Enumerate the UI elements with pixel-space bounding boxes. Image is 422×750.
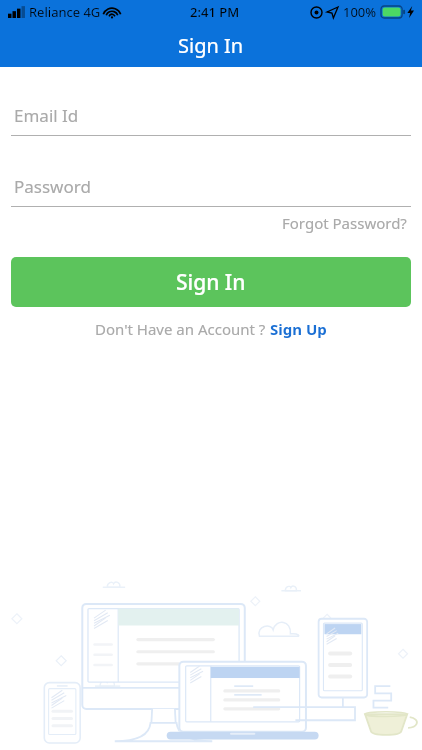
staticText: 100% — [343, 3, 377, 21]
staticText: Sign In — [176, 268, 246, 297]
staticText: Reliance 4G — [29, 3, 101, 21]
other: Location — [327, 7, 338, 18]
button[interactable]: Email Id — [0, 95, 422, 136]
button[interactable]: Sign In — [11, 257, 411, 307]
staticText: Forgot Password? — [282, 213, 407, 233]
staticText: Sign In — [178, 32, 244, 59]
staticText: Email Id — [14, 104, 79, 127]
button[interactable]: Forgot Password? — [278, 209, 411, 237]
staticText: Don't Have an Account ? — [95, 319, 270, 339]
button[interactable]: Password — [0, 166, 422, 207]
button[interactable]: Sign Up — [270, 319, 327, 339]
other: Alarm — [311, 7, 322, 18]
other: Wifi — [105, 6, 119, 18]
other: Signal — [8, 6, 26, 18]
staticText: Password — [14, 175, 91, 198]
staticText: 2:41 PM — [190, 3, 240, 21]
other: Battery — [381, 6, 405, 18]
staticText: Sign Up — [270, 319, 327, 339]
